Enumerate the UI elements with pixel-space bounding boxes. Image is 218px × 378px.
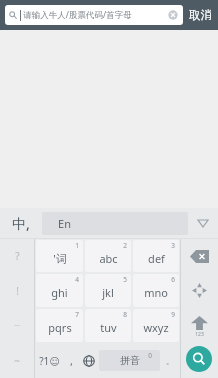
staticText: 1 [75,241,79,250]
staticText: 取消 [189,8,212,22]
button[interactable]: Backspace [181,239,218,273]
staticText: def [148,251,165,266]
staticText: En [58,216,71,231]
staticText: , [70,353,73,368]
button[interactable]: 1 [36,240,83,272]
staticText: 2 [123,241,127,250]
button[interactable]: ?1☺ [35,343,64,378]
staticText: 。 [166,356,174,366]
staticText: ··· [14,321,20,331]
staticText: 8 [123,310,127,319]
button[interactable]: 请输入牛人/股票代码/首字母 [5,5,183,25]
button[interactable]: En [42,212,188,235]
button[interactable]: 6 [133,274,179,307]
button[interactable]: Hide keyboard [188,208,218,238]
button[interactable]: ! [0,273,34,308]
button[interactable]: 5 [85,274,131,307]
button[interactable]: ? [0,239,34,273]
button[interactable]: Shift to 123 [181,308,218,378]
staticText: 4 [75,275,79,284]
staticText: 3 [171,241,175,250]
button[interactable]: Switch input language [79,343,99,378]
staticText: 7 [75,310,79,319]
staticText: wxyz [143,320,169,335]
staticText: pqrs [48,320,72,335]
staticText: '词 [53,251,67,266]
staticText: 0 [148,351,152,360]
staticText: 9 [171,310,175,319]
button[interactable]: Move cursor [181,273,218,308]
button[interactable]: 9 [133,309,179,342]
button[interactable]: 7 [36,309,83,342]
staticText: 123 [195,331,204,338]
staticText: 中, [12,214,30,233]
staticText: jkl [102,285,114,300]
staticText: ! [16,284,19,298]
staticText: abc [99,251,118,266]
staticText: 请输入牛人/股票代码/首字母 [23,9,132,21]
button[interactable]: 中, [0,208,42,238]
staticText: ?1☺ [39,354,60,368]
staticText: ~ [14,354,20,368]
button[interactable]: 8 [85,309,131,342]
button[interactable]: Clear text [167,9,179,21]
staticText: ghi [51,285,68,300]
staticText: tuv [100,320,117,335]
staticText: ? [15,249,20,263]
staticText: 6 [171,275,175,284]
button[interactable]: 3 [133,240,179,272]
staticText: 拼音 [120,354,140,367]
button[interactable]: Search [186,346,212,372]
button[interactable]: , [64,343,79,378]
staticText: mno [144,285,168,300]
button[interactable]: 4 [36,274,83,307]
staticText: 5 [123,275,127,284]
button[interactable]: 拼音 [99,350,160,371]
button[interactable]: 2 [85,240,131,272]
button[interactable]: 取消 [189,8,212,22]
